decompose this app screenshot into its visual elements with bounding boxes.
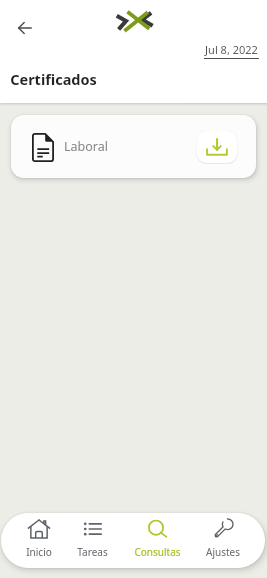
staticText: Consultas <box>134 545 181 559</box>
staticText: Certificados <box>10 69 97 89</box>
button[interactable]: Consultas <box>134 513 181 568</box>
staticText: Inicio <box>26 545 52 559</box>
button[interactable]: Inicio <box>26 513 52 568</box>
button[interactable]: Laboral <box>11 115 256 178</box>
button[interactable]: Back <box>7 10 43 46</box>
staticText: Jul 8, 2022 <box>205 42 258 57</box>
button[interactable]: Tareas <box>77 513 108 568</box>
button[interactable]: Download <box>197 131 237 163</box>
staticText: Ajustes <box>206 545 240 559</box>
staticText: Laboral <box>64 138 108 155</box>
staticText: Tareas <box>77 545 108 559</box>
button[interactable]: Ajustes <box>206 513 240 568</box>
